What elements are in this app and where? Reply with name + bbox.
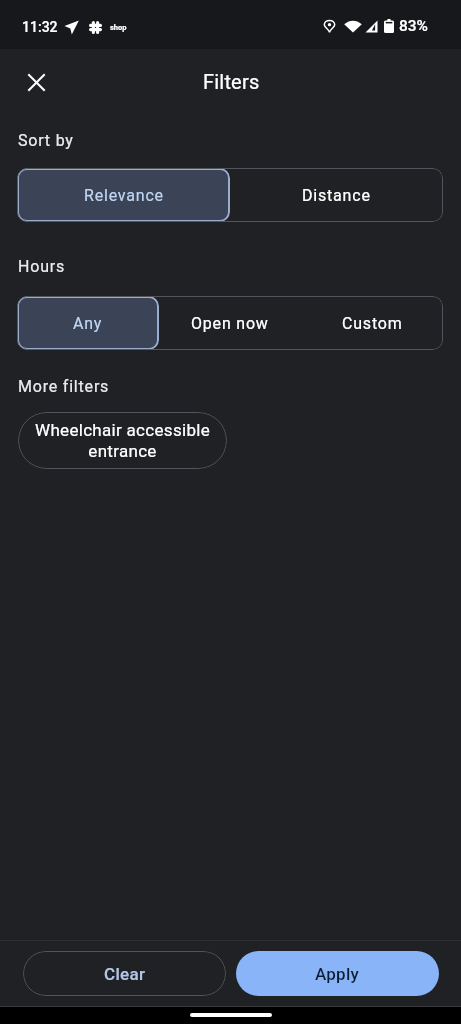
staticText: Apply [315,964,360,984]
button[interactable]: Apply [236,951,439,996]
staticText: Any [73,314,103,333]
staticText: Hours [18,257,66,276]
staticText: 11:32 [22,19,58,35]
button[interactable]: Any [17,296,159,350]
button[interactable]: Relevance [17,168,230,222]
button[interactable]: Close [14,60,58,104]
staticText: shop [110,23,127,32]
button[interactable]: Custom [301,296,443,350]
button[interactable]: Clear [23,951,226,996]
staticText: 83% [399,17,429,35]
staticText: Open now [191,314,269,333]
staticText: Clear [104,964,146,984]
button[interactable]: Distance [230,168,443,222]
staticText: Relevance [84,186,164,205]
staticText: More filters [18,377,110,396]
button[interactable]: Wheelchair accessible entrance [18,412,227,469]
staticText: Sort by [18,131,74,150]
staticText: Distance [302,186,371,205]
staticText: Filters [203,70,260,93]
staticText: Wheelchair accessible entrance [32,420,213,461]
button[interactable]: Open now [159,296,301,350]
staticText: Custom [342,314,403,333]
